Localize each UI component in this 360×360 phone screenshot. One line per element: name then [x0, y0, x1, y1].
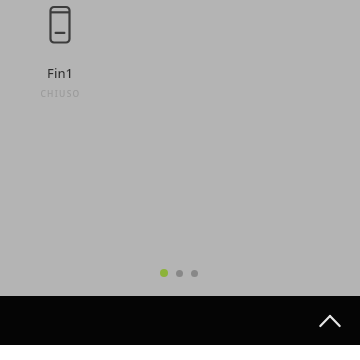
staticText: CHIUSO — [40, 88, 81, 100]
button[interactable]: Fin1 — [19, 5, 101, 100]
button[interactable]: Expand — [308, 299, 352, 343]
staticText: Fin1 — [47, 64, 73, 82]
